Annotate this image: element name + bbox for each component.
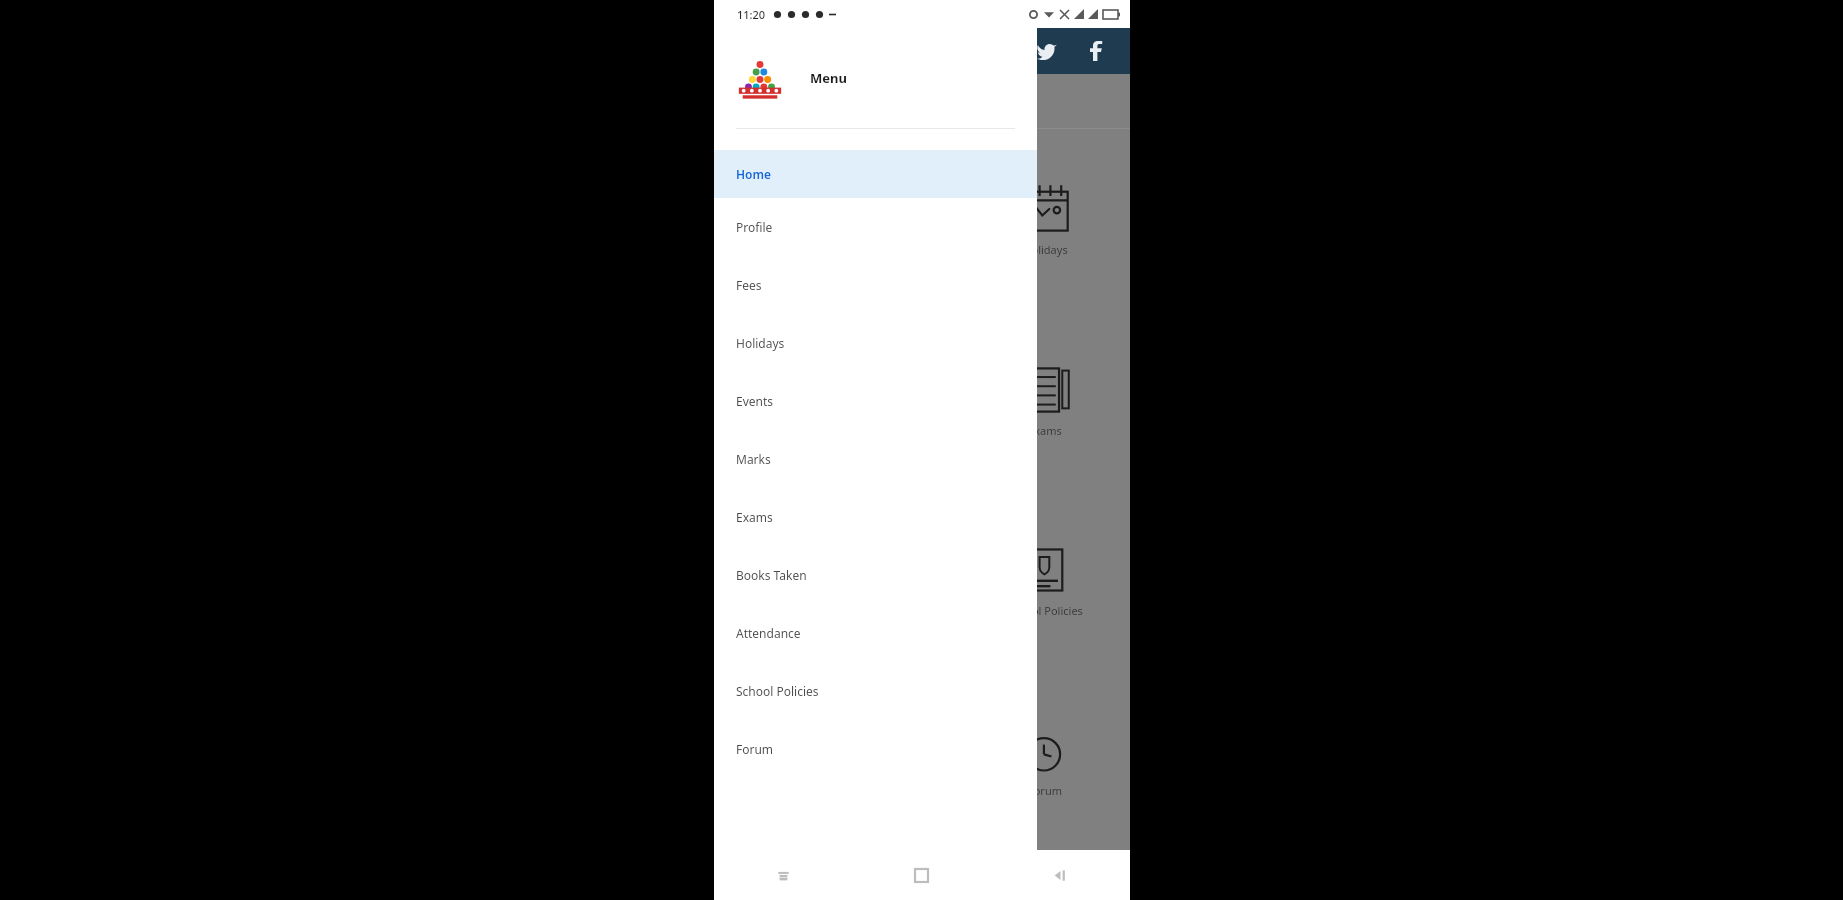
button[interactable]: Profile	[714, 198, 1037, 256]
staticText: Home	[736, 166, 772, 182]
staticText: Attendance	[736, 625, 801, 641]
button[interactable]: Home	[714, 150, 1037, 198]
button[interactable]: Exams	[714, 310, 1130, 490]
staticText: Books Taken	[736, 567, 807, 583]
button[interactable]: Twitter	[1032, 36, 1062, 66]
staticText: School Policies	[1007, 603, 1083, 618]
staticText: Holidays	[1023, 242, 1068, 257]
staticText: School Policies	[736, 683, 819, 699]
button[interactable]: Books Taken	[714, 546, 1037, 604]
button[interactable]: School Policies	[714, 490, 1130, 670]
staticText: Profile	[736, 219, 773, 235]
button[interactable]: Forum	[714, 720, 1037, 778]
staticText: Holidays	[736, 335, 785, 351]
button[interactable]: Attendance	[714, 604, 1037, 662]
staticText: Forum	[1028, 783, 1062, 798]
button[interactable]: Marks	[714, 430, 1037, 488]
button[interactable]: Exams	[714, 488, 1037, 546]
staticText: Marks	[736, 451, 771, 467]
button[interactable]: Facebook	[1080, 36, 1110, 66]
staticText: Forum	[736, 741, 774, 757]
button[interactable]: Holidays	[714, 129, 1130, 310]
staticText: Exams	[736, 509, 773, 525]
button[interactable]: Recents	[714, 850, 852, 900]
staticText: 11:20	[737, 7, 766, 22]
button[interactable]: Back	[991, 850, 1130, 900]
button[interactable]: School Policies	[714, 662, 1037, 720]
staticText: Events	[736, 393, 774, 409]
staticText: Menu	[810, 69, 847, 87]
button[interactable]: Fees	[714, 256, 1037, 314]
staticText: Exams	[1028, 423, 1062, 438]
button[interactable]: Home	[852, 850, 991, 900]
button[interactable]: Holidays	[714, 314, 1037, 372]
button[interactable]: Forum	[714, 670, 1130, 850]
button[interactable]: Events	[714, 372, 1037, 430]
staticText: Fees	[736, 277, 762, 293]
